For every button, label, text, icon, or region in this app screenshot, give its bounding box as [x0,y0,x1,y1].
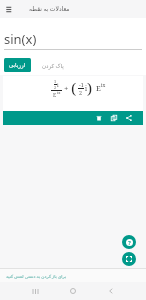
staticText: ) [87,78,93,98]
staticText: معادلات به نقطه [29,5,70,13]
staticText: پاک کردن [42,62,64,69]
staticText: ix [57,90,61,95]
button[interactable]: Fullscreen [122,252,136,266]
staticText: E [53,91,57,98]
staticText: ( [71,78,77,98]
staticText: 2 [79,89,83,96]
staticText: ارزیابی [9,62,26,68]
staticText: برای باز کردن به دستی لمس کنید [6,273,67,279]
button[interactable]: Help [122,235,136,249]
button[interactable]: ارزیابی [4,58,31,72]
button[interactable]: Home [65,283,81,299]
staticText: i [85,84,87,92]
button[interactable]: Copy [108,112,120,124]
button[interactable]: Share [123,112,135,124]
staticText: ix [101,82,106,89]
button[interactable]: Menu [4,3,16,15]
staticText: ? [128,239,131,246]
staticText: -1 [79,81,84,88]
button[interactable]: Back [103,283,119,299]
button[interactable]: Recents [27,283,43,299]
staticText: + [64,83,69,94]
staticText: i [57,81,59,88]
staticText: sin(x) [4,30,37,48]
staticText: 2 [54,85,57,90]
staticText: 1 [54,79,57,84]
button[interactable]: پاک کردن [41,58,65,72]
staticText: E [96,83,101,93]
button[interactable]: Delete [93,112,105,124]
